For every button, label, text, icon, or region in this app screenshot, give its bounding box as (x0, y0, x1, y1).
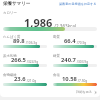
staticText: /2,363kcal (53, 23, 77, 29)
button[interactable]: 糖質 (53, 54, 97, 67)
staticText: カロリー (3, 11, 17, 15)
staticText: 食物繊維 (3, 73, 17, 77)
staticText: たんぱく質 (3, 35, 21, 39)
staticText: 食塩 (53, 73, 60, 77)
staticText: 23.6 (14, 75, 26, 83)
staticText: 栄養サマリー (3, 1, 31, 7)
staticText: 脂質 (53, 35, 60, 39)
staticText: /21.0g (26, 79, 37, 83)
other: 詳細を見る (94, 91, 97, 94)
button[interactable]: たんぱく質 (3, 35, 47, 48)
staticText: /303.9g (76, 60, 89, 64)
button[interactable]: 栄養素の目標値を設定する (59, 2, 97, 6)
button[interactable]: 炭水化物 (3, 54, 47, 67)
staticText: /7.50g (77, 79, 88, 83)
staticText: 糖質 (53, 54, 60, 58)
staticText: 炭水化物 (3, 54, 17, 58)
staticText: /106.3g (25, 41, 38, 45)
staticText: 266.5 (11, 56, 26, 64)
button[interactable]: 食物繊維 (3, 73, 47, 86)
button[interactable]: 食塩 (53, 73, 97, 86)
staticText: 89.8 (13, 37, 25, 45)
staticText: 詳細を見る (76, 90, 93, 94)
staticText: 1,986 (24, 15, 53, 30)
staticText: 10.58 (62, 75, 77, 83)
staticText: 栄養素の目標値を設定する (59, 2, 97, 6)
staticText: 240.7 (61, 56, 76, 64)
button[interactable]: 脂質 (53, 35, 97, 48)
staticText: /70.9g (76, 41, 87, 45)
staticText: 66.4 (64, 37, 76, 45)
button[interactable]: 詳細を見る (76, 90, 100, 94)
staticText: /324.9g (26, 60, 39, 64)
